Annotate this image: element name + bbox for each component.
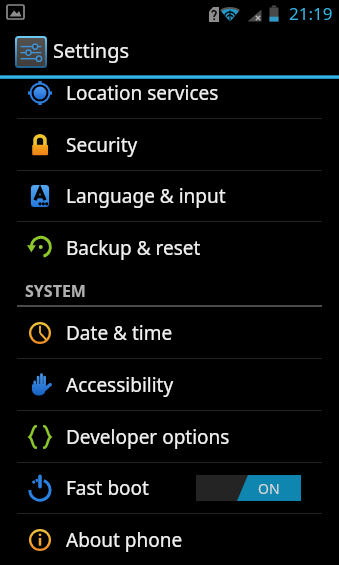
- staticText: Fast boot: [66, 475, 149, 501]
- staticText: ON: [258, 479, 280, 498]
- button[interactable]: Language & input: [0, 170, 339, 222]
- staticText: SYSTEM: [25, 280, 86, 302]
- staticText: Settings: [53, 37, 130, 64]
- staticText: Location services: [66, 80, 219, 106]
- staticText: 21:19: [289, 2, 333, 25]
- button[interactable]: Security: [0, 119, 339, 171]
- button[interactable]: ON: [196, 475, 301, 501]
- button[interactable]: Developer options: [0, 411, 339, 463]
- button[interactable]: About phone: [0, 514, 339, 565]
- button[interactable]: Accessibility: [0, 359, 339, 411]
- staticText: About phone: [66, 527, 183, 553]
- button[interactable]: Date & time: [0, 307, 339, 359]
- staticText: Security: [66, 132, 138, 158]
- staticText: Backup & reset: [66, 235, 201, 261]
- button[interactable]: Location services: [0, 79, 339, 119]
- button[interactable]: Fast boot: [0, 462, 339, 514]
- button[interactable]: Settings: [0, 26, 339, 74]
- staticText: Accessibility: [66, 372, 174, 398]
- staticText: Language & input: [66, 183, 226, 209]
- button[interactable]: Backup & reset: [0, 222, 339, 274]
- staticText: Developer options: [66, 424, 230, 450]
- staticText: Date & time: [66, 320, 173, 346]
